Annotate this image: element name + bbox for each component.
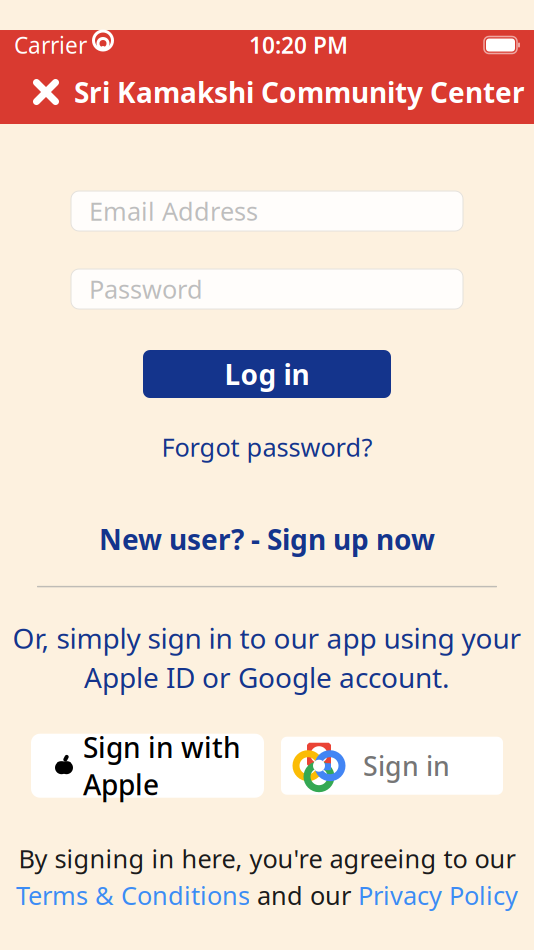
button[interactable]: Sign in <box>281 737 503 795</box>
staticText: By signing in here, you're agreeing to o… <box>18 842 515 875</box>
staticText: Terms & Conditions <box>16 878 250 912</box>
button[interactable]: Privacy Policy <box>358 878 518 912</box>
staticText: Carrier <box>14 30 87 60</box>
staticText: Log in <box>224 355 309 393</box>
button[interactable]: Email Address <box>71 191 463 231</box>
button[interactable]: Log in <box>143 350 391 398</box>
staticText: Sri Kamakshi Community Center <box>74 73 525 111</box>
button[interactable]: Close <box>18 61 74 123</box>
button[interactable]: Forgot password? <box>151 426 382 468</box>
staticText: Email Address <box>89 194 258 228</box>
staticText: Privacy Policy <box>358 878 518 912</box>
staticText: New user? - Sign up now <box>99 521 435 558</box>
staticText: Apple ID or Google account. <box>84 658 450 696</box>
staticText: Or, simply sign in to our app using your <box>12 619 521 656</box>
staticText: Sign in with Apple <box>83 728 241 803</box>
staticText: Sign in <box>363 748 450 783</box>
staticText: Password <box>89 272 203 306</box>
staticText: 10:20 PM <box>249 30 348 60</box>
button[interactable]: Password <box>71 269 463 309</box>
staticText: and our <box>250 878 358 912</box>
button[interactable]: Sign in with Apple <box>31 734 264 798</box>
button[interactable]: Terms & Conditions <box>16 878 250 912</box>
staticText: Forgot password? <box>161 430 372 464</box>
button[interactable]: New user? - Sign up now <box>89 517 445 562</box>
